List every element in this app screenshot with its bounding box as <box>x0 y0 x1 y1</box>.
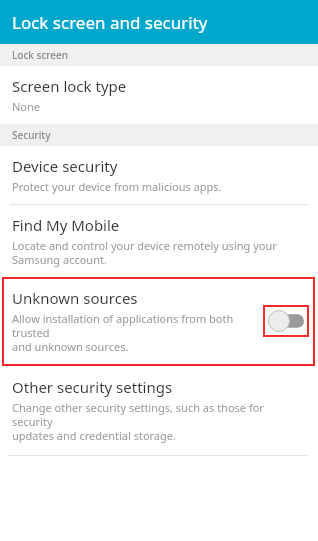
button[interactable]: Find My Mobile <box>0 205 318 278</box>
button[interactable]: Device security <box>0 146 318 204</box>
button[interactable]: Screen lock type <box>0 66 318 124</box>
staticText: None <box>12 99 41 114</box>
staticText: Security <box>12 128 51 142</box>
staticText: Lock screen <box>12 48 69 62</box>
staticText: Change other security settings, such as … <box>12 400 306 443</box>
staticText: Screen lock type <box>12 76 127 96</box>
staticText: Locate and control your device remotely … <box>12 238 277 267</box>
staticText: Allow installation of applications from … <box>12 311 264 354</box>
staticText: Protect your device from malicious apps. <box>12 179 222 194</box>
button[interactable]: Unknown sources <box>3 278 314 365</box>
staticText: Device security <box>12 156 118 176</box>
staticText: Find My Mobile <box>12 215 120 235</box>
staticText: Other security settings <box>12 377 173 397</box>
button[interactable]: Other security settings <box>0 365 318 455</box>
staticText: Unknown sources <box>12 288 138 308</box>
button[interactable]: Unknown sources, off <box>268 310 304 332</box>
staticText: Lock screen and security <box>12 11 208 34</box>
